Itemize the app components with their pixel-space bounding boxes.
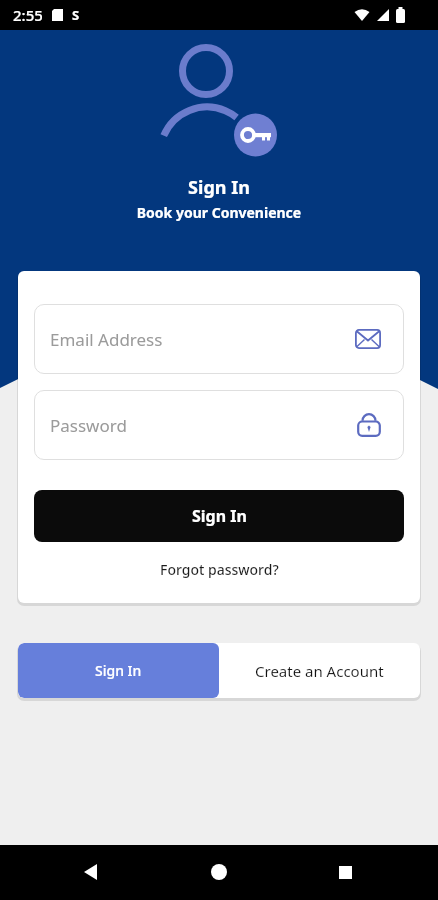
button[interactable]: Create an Account — [219, 643, 420, 698]
staticText: 2:55 — [13, 5, 43, 25]
staticText: Sign In — [95, 661, 142, 680]
staticText: Sign In — [0, 175, 438, 200]
staticText: S — [72, 6, 80, 24]
button[interactable]: Email Address — [50, 304, 381, 374]
button[interactable] — [325, 852, 365, 892]
staticText: Forgot password? — [160, 560, 279, 579]
staticText: Create an Account — [255, 661, 384, 681]
staticText: Password — [50, 414, 127, 437]
staticText: Book your Convenience — [0, 203, 438, 222]
button[interactable]: Sign In — [34, 490, 404, 542]
staticText: Email Address — [50, 328, 163, 351]
button[interactable]: Forgot password? — [34, 560, 404, 579]
button[interactable]: Password — [50, 390, 381, 460]
button[interactable] — [199, 852, 239, 892]
button[interactable] — [71, 852, 111, 892]
staticText: Sign In — [192, 505, 247, 527]
button[interactable]: Sign In — [18, 643, 219, 698]
